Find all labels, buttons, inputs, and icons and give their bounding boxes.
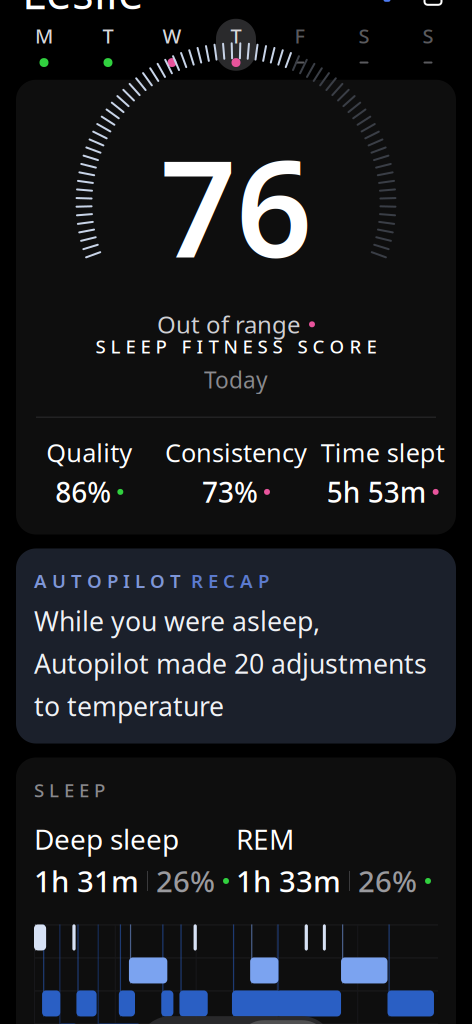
staticText: Leslie — [22, 0, 144, 22]
staticText: M — [35, 22, 53, 49]
staticText: W — [162, 22, 181, 49]
button[interactable]: Sleep — [142, 1020, 236, 1024]
staticText: T — [102, 22, 113, 49]
staticText: S — [422, 22, 433, 49]
staticText: S — [358, 22, 369, 49]
button[interactable]: T — [216, 19, 256, 71]
button[interactable]: Insights — [370, 0, 404, 9]
staticText: 5h 53m — [327, 473, 427, 510]
staticText: REM — [236, 820, 294, 857]
staticText: F — [294, 22, 305, 49]
staticText: S L E E P — [34, 777, 105, 802]
button[interactable]: A U T O P I L O T — [16, 548, 456, 743]
staticText: T — [230, 22, 241, 49]
button[interactable]: S — [408, 19, 448, 71]
staticText: 1h 33m — [236, 861, 341, 900]
staticText: A U T O P I L O T — [34, 568, 186, 593]
staticText: S L E E P F I T N E S S S C O R E — [95, 334, 376, 359]
staticText: 86% — [55, 473, 111, 510]
button[interactable]: Trends — [236, 1020, 330, 1024]
staticText: 73% — [202, 473, 258, 510]
button[interactable]: Share — [404, 0, 450, 9]
staticText: 26% — [358, 861, 417, 900]
button[interactable]: S — [344, 19, 384, 71]
staticText: Today — [204, 365, 268, 395]
button[interactable]: T — [88, 19, 128, 71]
staticText: 76 — [160, 117, 312, 294]
staticText: Consistency — [165, 436, 307, 469]
button[interactable]: W — [152, 19, 192, 71]
staticText: While you were asleep, Autopilot made 20… — [34, 603, 427, 723]
staticText: Time slept — [321, 436, 445, 469]
button[interactable]: M — [24, 19, 64, 71]
staticText: Out of range — [157, 308, 301, 340]
staticText: 1h 31m — [34, 861, 139, 900]
staticText: R E C A P — [186, 568, 269, 593]
staticText: Quality — [46, 436, 132, 469]
button[interactable]: Leslie — [22, 0, 173, 22]
staticText: 26% — [156, 861, 215, 900]
staticText: Deep sleep — [34, 820, 179, 857]
button[interactable]: F — [280, 19, 320, 71]
